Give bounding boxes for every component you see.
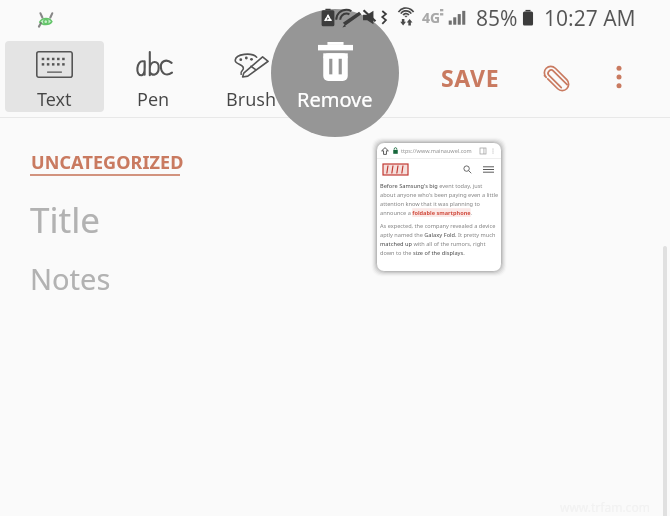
staticText: Remove — [301, 87, 370, 112]
button[interactable]: Brush — [202, 41, 300, 112]
staticText: Before Samsung's big event today, just a… — [380, 182, 499, 217]
staticText: UNCATEGORIZED — [31, 150, 184, 175]
staticText: Title — [30, 196, 100, 244]
staticText: 85% — [476, 4, 518, 33]
button[interactable]: ttps://www.mainauwel.com — [377, 143, 501, 271]
staticText: ttps://www.mainauwel.com — [401, 147, 472, 154]
staticText: Remove — [297, 86, 373, 113]
button[interactable]: Remove — [289, 41, 381, 112]
staticText: Brush — [226, 87, 277, 112]
staticText: SAVE — [441, 62, 500, 93]
staticText: Text — [37, 87, 72, 112]
button[interactable]: More options — [596, 54, 642, 100]
staticText: As expected, the company revealed a devi… — [380, 222, 499, 257]
button[interactable]: Remove — [271, 9, 399, 137]
button[interactable]: Text — [5, 41, 104, 112]
button[interactable]: Attach — [532, 54, 580, 102]
button[interactable]: SAVE — [432, 55, 508, 99]
staticText: Pen — [137, 87, 170, 112]
button[interactable]: Pen — [104, 41, 202, 112]
staticText: Notes — [30, 259, 111, 298]
staticText: 10:27 AM — [544, 4, 636, 33]
staticText: 4G — [422, 8, 441, 27]
